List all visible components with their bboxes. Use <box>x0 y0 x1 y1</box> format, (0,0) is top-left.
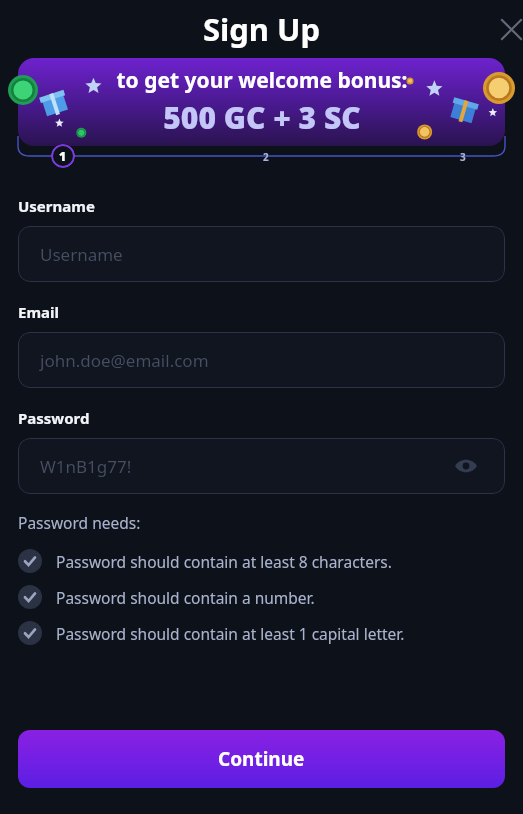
button[interactable]: to get your welcome bonus: <box>18 58 505 146</box>
staticText: Password <box>18 408 90 428</box>
staticText: 3 <box>460 150 466 164</box>
button[interactable]: Close <box>491 9 523 49</box>
staticText: Email <box>18 302 59 322</box>
staticText: Username <box>18 196 95 216</box>
button[interactable]: john.doe@email.com <box>18 332 505 388</box>
staticText: W1nB1g77! <box>40 455 132 478</box>
button[interactable]: Show password <box>449 449 483 483</box>
staticText: to get your welcome bonus: <box>116 66 408 95</box>
staticText: john.doe@email.com <box>40 349 209 372</box>
staticText: 1 <box>59 148 67 164</box>
staticText: Username <box>40 243 123 266</box>
staticText: 2 <box>263 150 269 164</box>
button[interactable]: Password should contain at least 1 capit… <box>18 615 505 651</box>
button[interactable]: Username <box>18 226 505 282</box>
staticText: Password needs: <box>18 512 141 533</box>
button[interactable]: W1nB1g77! <box>18 438 505 494</box>
button[interactable]: Password should contain a number. <box>18 579 505 615</box>
button[interactable]: Password should contain at least 8 chara… <box>18 543 505 579</box>
button[interactable]: Continue <box>18 730 505 788</box>
staticText: Continue <box>218 746 305 772</box>
staticText: Password should contain at least 1 capit… <box>56 623 405 644</box>
staticText: Sign Up <box>0 8 523 50</box>
staticText: 500 GC + 3 SC <box>163 97 361 138</box>
staticText: Password should contain at least 8 chara… <box>56 551 392 572</box>
button[interactable]: 1 <box>51 144 75 168</box>
staticText: Password should contain a number. <box>56 587 315 608</box>
